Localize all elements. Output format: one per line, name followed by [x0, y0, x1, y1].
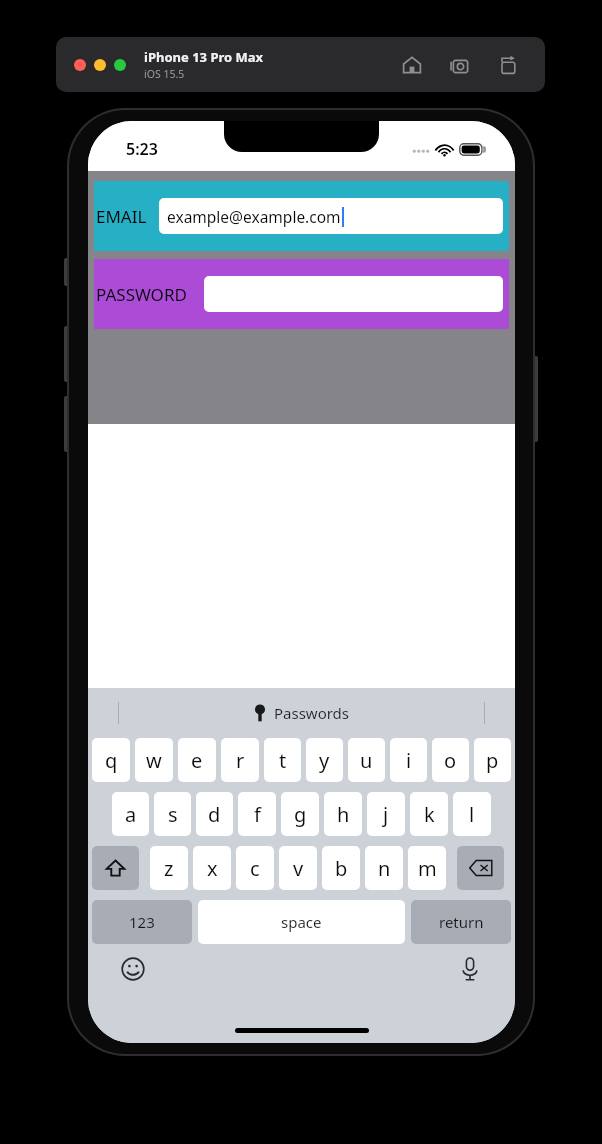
- staticText: Passwords: [274, 703, 350, 723]
- button[interactable]: b: [322, 846, 360, 890]
- button[interactable]: Emoji: [118, 954, 148, 984]
- button[interactable]: s: [154, 792, 191, 836]
- button[interactable]: Dictation: [455, 954, 485, 984]
- button[interactable]: Screenshot: [445, 50, 475, 80]
- staticText: b: [335, 855, 348, 882]
- button[interactable]: l: [453, 792, 491, 836]
- staticText: a: [125, 801, 137, 828]
- staticText: h: [337, 801, 350, 828]
- staticText: u: [360, 747, 373, 774]
- button[interactable]: q: [92, 738, 130, 782]
- staticText: l: [469, 801, 475, 828]
- staticText: n: [378, 855, 391, 882]
- button[interactable]: z: [150, 846, 188, 890]
- button[interactable]: Backspace: [457, 846, 504, 890]
- button[interactable]: m: [408, 846, 446, 890]
- staticText: j: [383, 801, 389, 828]
- staticText: iPhone 13 Pro Max: [144, 48, 264, 66]
- staticText: s: [168, 801, 178, 828]
- staticText: g: [294, 801, 307, 828]
- staticText: c: [250, 855, 260, 882]
- button[interactable]: example@example.com: [159, 198, 503, 234]
- button[interactable]: return: [411, 900, 511, 944]
- staticText: example@example.com: [167, 206, 341, 227]
- staticText: 123: [129, 912, 155, 932]
- staticText: d: [208, 801, 221, 828]
- button[interactable]: Passwords: [254, 703, 350, 723]
- button[interactable]: Rotate: [493, 50, 523, 80]
- button[interactable]: y: [306, 738, 343, 782]
- button[interactable]: e: [178, 738, 216, 782]
- button[interactable]: k: [410, 792, 448, 836]
- button[interactable]: w: [135, 738, 173, 782]
- staticText: p: [486, 747, 499, 774]
- button[interactable]: r: [221, 738, 259, 782]
- button[interactable]: p: [474, 738, 511, 782]
- staticText: i: [406, 747, 412, 774]
- staticText: o: [444, 747, 457, 774]
- staticText: w: [146, 747, 162, 774]
- button[interactable]: g: [281, 792, 319, 836]
- staticText: t: [279, 747, 287, 774]
- button[interactable]: j: [367, 792, 405, 836]
- staticText: v: [293, 855, 304, 882]
- button[interactable]: h: [324, 792, 362, 836]
- staticText: x: [207, 855, 218, 882]
- button[interactable]: t: [264, 738, 301, 782]
- button[interactable]: u: [348, 738, 385, 782]
- staticText: y: [319, 747, 330, 774]
- button[interactable]: [204, 276, 503, 312]
- staticText: z: [164, 855, 174, 882]
- button[interactable]: Shift: [92, 846, 139, 890]
- staticText: space: [281, 912, 322, 932]
- button[interactable]: d: [196, 792, 233, 836]
- button[interactable]: [74, 59, 86, 71]
- button[interactable]: [114, 59, 126, 71]
- button[interactable]: v: [279, 846, 317, 890]
- button[interactable]: PASSWORD: [94, 259, 509, 329]
- button[interactable]: space: [198, 900, 405, 944]
- button[interactable]: o: [432, 738, 469, 782]
- button[interactable]: 123: [92, 900, 192, 944]
- staticText: iOS 15.5: [144, 67, 185, 81]
- staticText: f: [254, 801, 261, 828]
- button[interactable]: Home: [397, 50, 427, 80]
- staticText: e: [191, 747, 203, 774]
- staticText: return: [439, 912, 484, 932]
- button[interactable]: c: [236, 846, 274, 890]
- button[interactable]: x: [193, 846, 231, 890]
- staticText: m: [418, 855, 437, 882]
- staticText: q: [105, 747, 118, 774]
- button[interactable]: [94, 59, 106, 71]
- staticText: r: [236, 747, 245, 774]
- button[interactable]: EMAIL: [94, 181, 509, 251]
- staticText: k: [424, 801, 435, 828]
- button[interactable]: f: [238, 792, 276, 836]
- staticText: PASSWORD: [96, 283, 187, 306]
- staticText: 5:23: [126, 138, 158, 160]
- button[interactable]: a: [112, 792, 149, 836]
- staticText: EMAIL: [96, 205, 147, 228]
- button[interactable]: i: [390, 738, 427, 782]
- button[interactable]: n: [365, 846, 403, 890]
